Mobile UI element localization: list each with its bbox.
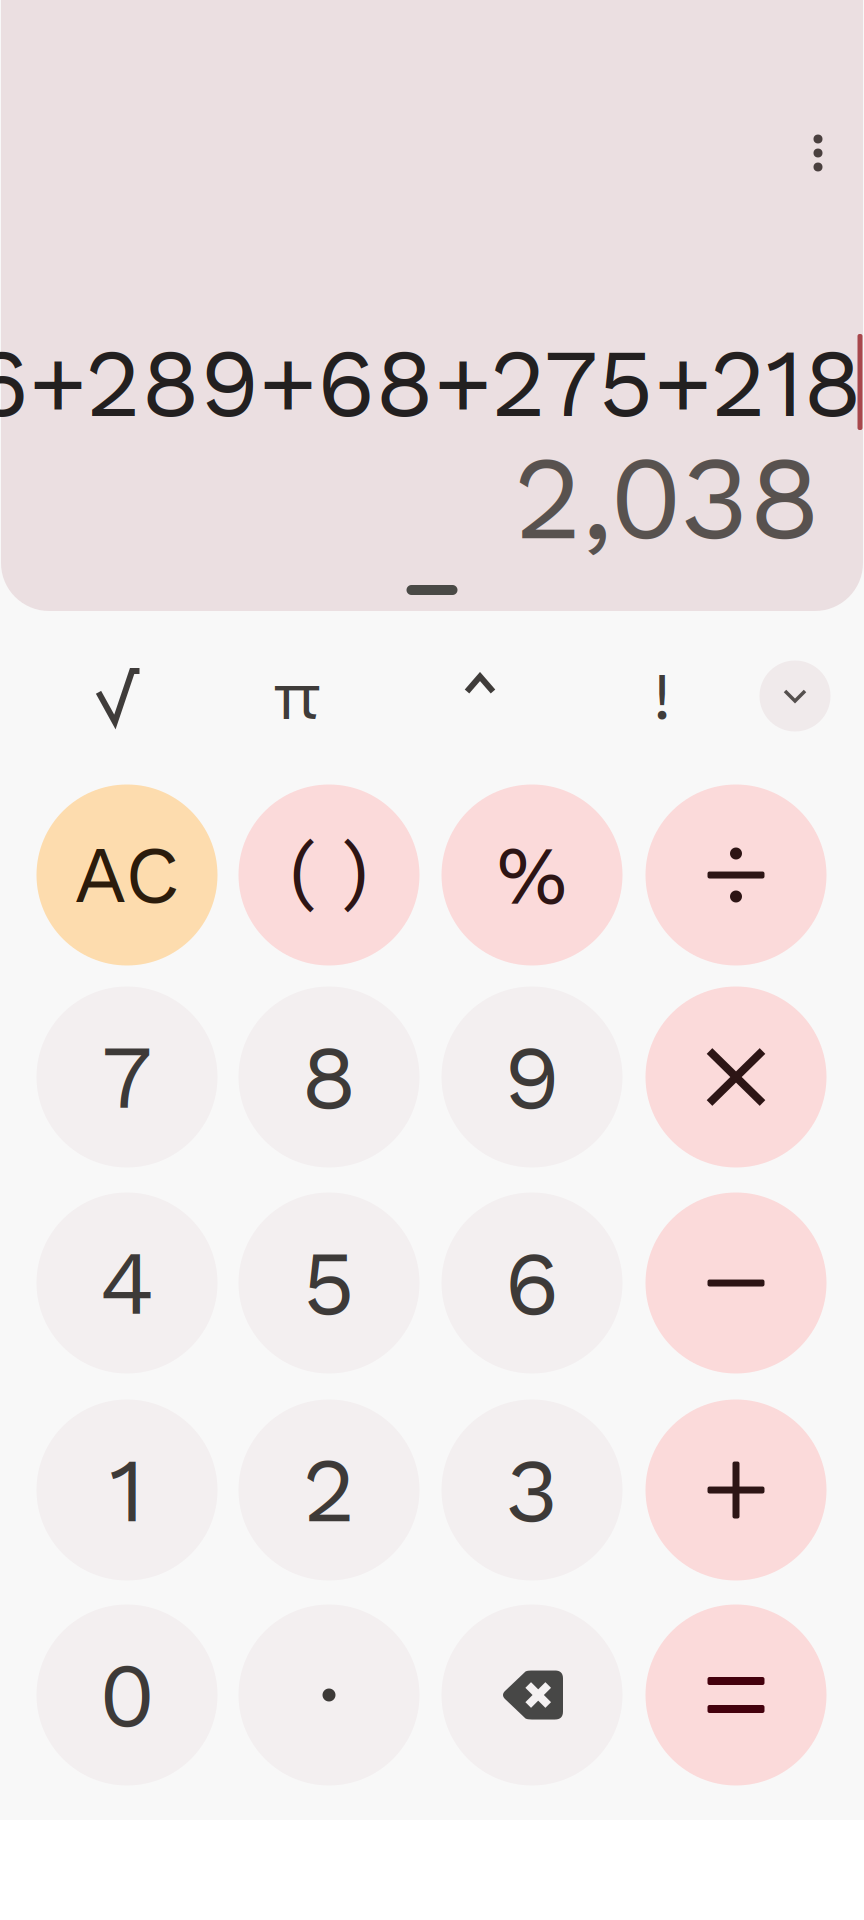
- button[interactable]: Divide: [645, 784, 826, 965]
- button[interactable]: Minus: [645, 1192, 826, 1373]
- button[interactable]: Decimal point: [238, 1604, 419, 1785]
- button[interactable]: 9: [441, 986, 622, 1167]
- staticText: AC: [74, 828, 180, 922]
- button[interactable]: Equals: [645, 1604, 826, 1785]
- button[interactable]: Delete: [441, 1604, 622, 1785]
- staticText: 6: [504, 1230, 559, 1336]
- button[interactable]: !: [587, 636, 737, 754]
- button[interactable]: %: [441, 784, 622, 965]
- button[interactable]: Plus: [645, 1399, 826, 1580]
- staticText: %: [496, 826, 567, 923]
- button[interactable]: ( ): [238, 784, 419, 965]
- staticText: 0: [99, 1642, 155, 1748]
- button[interactable]: 4: [36, 1192, 217, 1373]
- button[interactable]: π: [222, 636, 372, 754]
- staticText: !: [653, 657, 671, 735]
- staticText: 2: [302, 1437, 355, 1543]
- button[interactable]: 8: [238, 986, 419, 1167]
- button[interactable]: 0: [36, 1604, 217, 1785]
- staticText: 4: [99, 1230, 154, 1336]
- staticText: 8: [301, 1024, 357, 1130]
- staticText: 9: [504, 1024, 560, 1130]
- button[interactable]: 5: [238, 1192, 419, 1373]
- staticText: 3: [505, 1437, 558, 1543]
- button[interactable]: 7: [36, 986, 217, 1167]
- button[interactable]: More options: [772, 103, 864, 203]
- button[interactable]: More functions: [759, 660, 830, 731]
- staticText: 2,038: [513, 429, 820, 567]
- button[interactable]: Square root: [44, 636, 194, 754]
- staticText: 5: [302, 1230, 355, 1336]
- staticText: π: [272, 657, 321, 735]
- button[interactable]: Multiply: [645, 986, 826, 1167]
- button[interactable]: 3: [441, 1399, 622, 1580]
- button[interactable]: 1: [36, 1399, 217, 1580]
- staticText: 1: [109, 1437, 144, 1543]
- staticText: 7: [101, 1024, 152, 1130]
- staticText: ( ): [289, 826, 369, 916]
- staticText: 186+289+68+275+218: [0, 327, 862, 439]
- button[interactable]: AC: [36, 784, 217, 965]
- button[interactable]: 6: [441, 1192, 622, 1373]
- button[interactable]: 2: [238, 1399, 419, 1580]
- button[interactable]: Power: [405, 636, 555, 754]
